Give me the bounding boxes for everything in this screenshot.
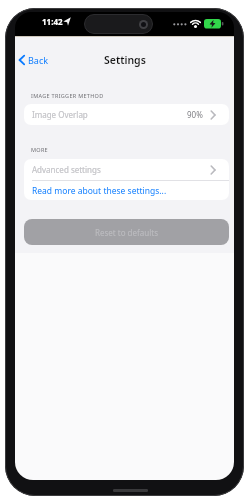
button[interactable]: Read more about these settings... (24, 181, 229, 200)
staticText: Image Overlap (32, 109, 88, 120)
staticText: 11:42 (42, 16, 63, 27)
staticText: 90% (187, 109, 203, 120)
staticText: Settings (104, 53, 146, 67)
staticText: Reset to defaults (95, 227, 159, 238)
button[interactable]: Image Overlap (24, 104, 229, 125)
button[interactable]: Reset to defaults (24, 219, 229, 245)
staticText: IMAGE TRIGGER METHOD (31, 92, 104, 99)
staticText: Read more about these settings... (32, 185, 167, 197)
staticText: MORE (31, 146, 48, 153)
button[interactable]: Back (28, 53, 68, 67)
staticText: Back (28, 54, 49, 66)
button[interactable]: Advanced settings (24, 159, 229, 180)
staticText: Advanced settings (32, 164, 101, 175)
